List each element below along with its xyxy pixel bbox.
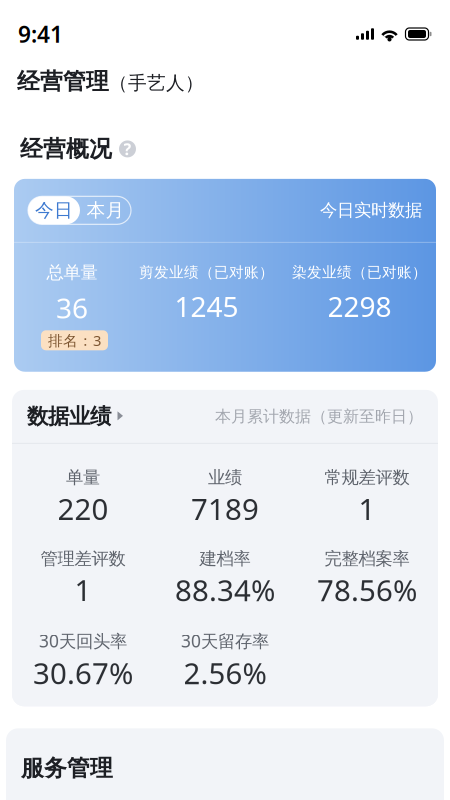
staticText: 本月: [86, 199, 124, 222]
staticText: 染发业绩（已对账）: [292, 263, 427, 281]
staticText: 1: [74, 570, 91, 609]
button[interactable]: 今日: [28, 196, 80, 224]
staticText: 2298: [327, 287, 391, 325]
staticText: 30天留存率: [181, 629, 269, 652]
staticText: 78.56%: [317, 570, 417, 609]
staticText: 9:41: [18, 19, 63, 49]
staticText: 剪发业绩（已对账）: [139, 263, 274, 281]
staticText: 经营概况: [20, 135, 112, 163]
button[interactable]: 数据业绩: [12, 390, 438, 443]
staticText: 完整档案率: [324, 548, 409, 569]
staticText: 业绩: [208, 467, 242, 488]
staticText: 排名：3: [48, 331, 101, 350]
staticText: 2.56%: [183, 653, 266, 692]
staticText: 今日实时数据: [320, 200, 422, 221]
staticText: 总单量: [46, 262, 97, 283]
staticText: 服务管理: [21, 754, 113, 782]
staticText: 1245: [174, 287, 238, 325]
staticText: 本月累计数据（更新至昨日）: [215, 406, 423, 426]
staticText: 建档率: [199, 548, 250, 569]
staticText: 30.67%: [33, 653, 133, 692]
staticText: 常规差评数: [324, 467, 409, 488]
staticText: 7189: [191, 489, 259, 528]
staticText: 经营管理: [17, 68, 109, 95]
staticText: 88.34%: [175, 570, 275, 609]
staticText: 今日: [35, 199, 73, 222]
staticText: 1: [358, 489, 375, 528]
staticText: 管理差评数: [40, 548, 125, 569]
staticText: 数据业绩: [27, 403, 111, 429]
button[interactable]: 帮助: [119, 140, 136, 157]
staticText: ?: [123, 138, 131, 159]
staticText: 30天回头率: [39, 629, 127, 652]
staticText: 220: [57, 489, 108, 528]
staticText: 36: [56, 289, 88, 326]
button[interactable]: 本月: [80, 196, 131, 224]
staticText: （手艺人）: [109, 71, 204, 94]
staticText: 单量: [66, 467, 100, 488]
